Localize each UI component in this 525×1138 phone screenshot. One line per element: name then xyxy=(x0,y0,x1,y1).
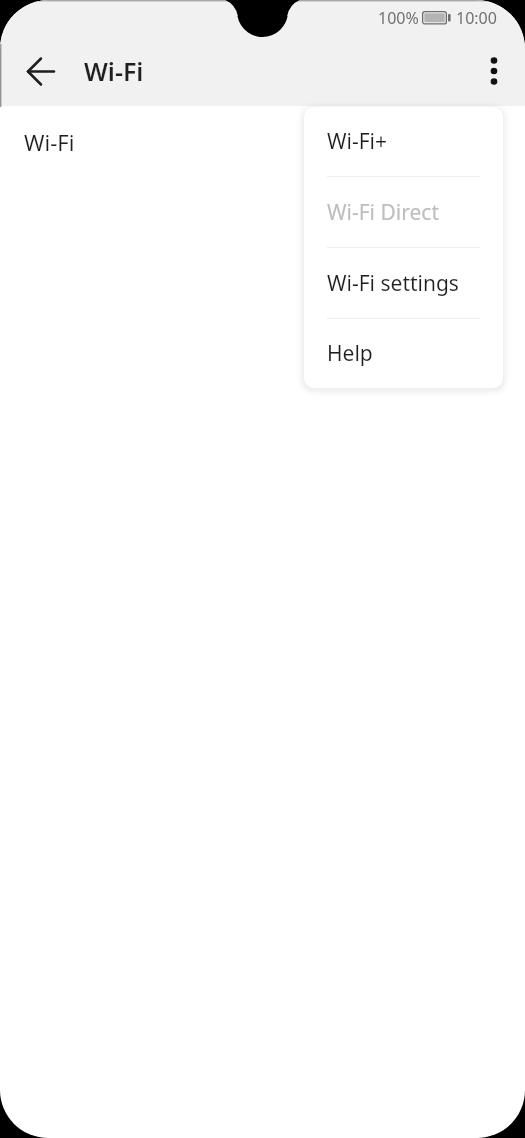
staticText: Help xyxy=(327,339,373,368)
staticText: Wi-Fi xyxy=(84,54,144,88)
button[interactable]: More options xyxy=(467,44,521,98)
staticText: Wi-Fi+ xyxy=(327,127,388,156)
staticText: Wi-Fi settings xyxy=(327,269,459,298)
staticText: Wi-Fi xyxy=(24,127,75,157)
staticText: Wi-Fi Direct xyxy=(327,198,439,227)
button[interactable]: Wi-Fi settings xyxy=(304,248,503,318)
button[interactable]: Wi-Fi+ xyxy=(304,107,503,176)
button[interactable]: Help xyxy=(304,319,503,388)
staticText: 100% xyxy=(378,7,419,29)
button[interactable]: Wi-Fi Direct xyxy=(304,177,503,247)
button[interactable]: Back xyxy=(13,43,69,99)
staticText: 10:00 xyxy=(456,7,497,29)
button[interactable]: Wi-Fi xyxy=(0,106,525,178)
